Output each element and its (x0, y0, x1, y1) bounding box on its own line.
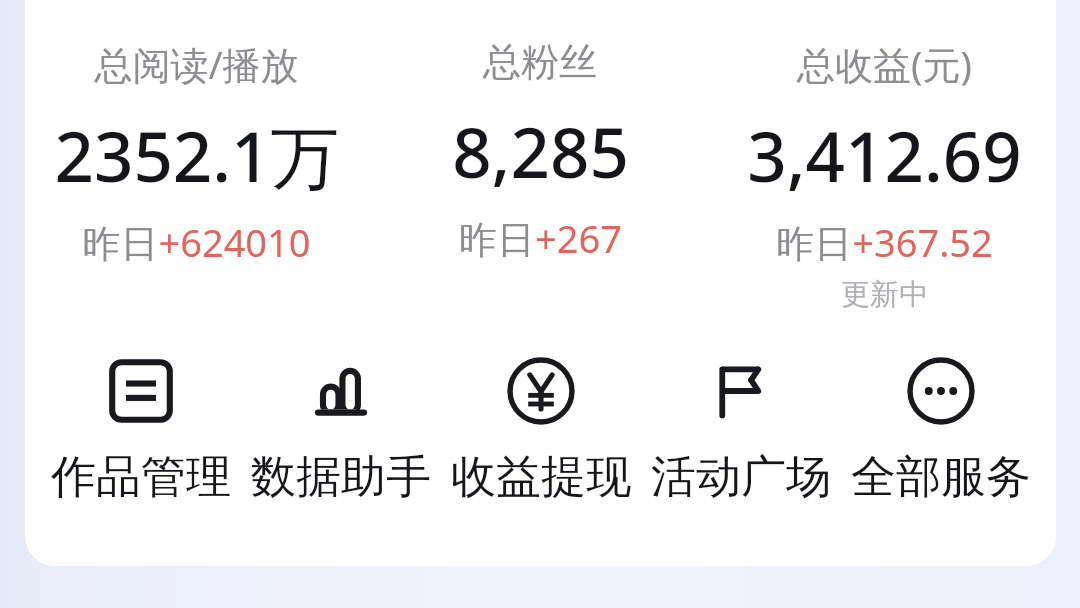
staticText: 全部服务 (851, 449, 1031, 506)
staticText: 总收益(元) (797, 38, 972, 90)
button[interactable]: 活动广场 (641, 355, 841, 506)
staticText: 收益提现 (451, 449, 631, 506)
button[interactable]: 数据助手 (241, 355, 441, 506)
staticText: 2352.1万 (54, 108, 340, 202)
staticText: 数据助手 (251, 449, 431, 506)
staticText: 总粉丝 (483, 38, 597, 86)
button[interactable]: 全部服务 (841, 355, 1041, 506)
staticText: 8,285 (452, 104, 629, 198)
button[interactable]: 作品管理 (41, 355, 241, 506)
other: 作品管理 (105, 355, 177, 427)
button[interactable]: 收益提现 (441, 355, 641, 506)
staticText: 作品管理 (51, 449, 231, 506)
other: 数据助手 (305, 355, 377, 427)
button[interactable]: 总收益(元) (712, 0, 1056, 320)
staticText: 昨日+624010 (82, 216, 311, 268)
staticText: 总阅读/播放 (94, 38, 299, 90)
button[interactable]: 总粉丝 (368, 0, 712, 320)
staticText: 活动广场 (651, 449, 831, 506)
other: 活动广场 (705, 355, 777, 427)
other: 全部服务 (905, 355, 977, 427)
staticText: 昨日+267 (459, 212, 622, 264)
other: 收益提现 (505, 355, 577, 427)
staticText: 3,412.69 (747, 108, 1022, 202)
button[interactable]: 总阅读/播放 (25, 0, 368, 320)
staticText: 昨日+367.52 (776, 216, 993, 268)
staticText: 更新中 (841, 276, 928, 313)
